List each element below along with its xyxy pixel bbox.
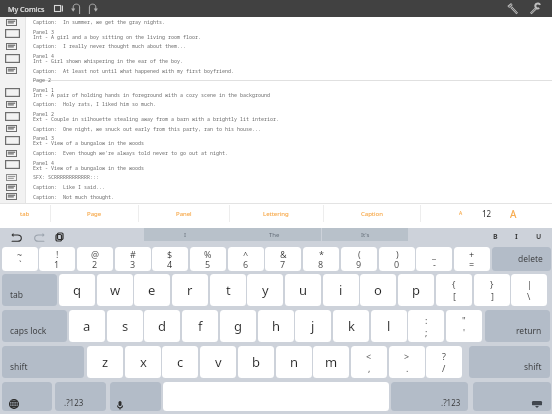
button[interactable]: Paste: [52, 230, 66, 244]
button[interactable]: Caption: [6, 19, 17, 26]
button[interactable]: u: [285, 274, 321, 306]
button[interactable]: Caption: [6, 184, 17, 191]
button[interactable]: Hide keyboard: [473, 382, 551, 411]
button[interactable]: t: [210, 274, 246, 306]
button[interactable]: Sound effect: [6, 174, 17, 181]
button[interactable]: Panels: [49, 0, 67, 17]
button[interactable]: U: [531, 229, 546, 244]
button[interactable]: Caption: [6, 150, 17, 157]
button[interactable]: Panel: [5, 160, 20, 169]
button[interactable]: l: [371, 310, 407, 342]
button[interactable]: .?123: [391, 382, 468, 411]
button[interactable]: It's: [322, 228, 408, 241]
button[interactable]: tab: [0, 204, 50, 223]
button[interactable]: Panel: [5, 88, 20, 97]
button[interactable]: :: [408, 310, 444, 342]
button[interactable]: 12: [466, 204, 508, 223]
button[interactable]: Undo: [68, 0, 84, 17]
button[interactable]: My Comics: [8, 0, 45, 17]
button[interactable]: c: [162, 346, 198, 378]
button[interactable]: q: [59, 274, 95, 306]
button[interactable]: ): [379, 247, 415, 271]
button[interactable]: Wrench tool: [526, 0, 544, 17]
button[interactable]: k: [333, 310, 369, 342]
staticText: B: [493, 232, 498, 242]
button[interactable]: x: [125, 346, 161, 378]
button[interactable]: +: [454, 247, 490, 271]
button[interactable]: Undo: [9, 230, 23, 244]
button[interactable]: Hammer tool: [504, 0, 522, 17]
button[interactable]: ?: [426, 346, 462, 378]
button[interactable]: p: [398, 274, 434, 306]
button[interactable]: caps lock: [2, 310, 67, 342]
button[interactable]: Change keyboard language: [2, 382, 52, 411]
button[interactable]: Voice input: [110, 382, 161, 411]
button[interactable]: m: [313, 346, 349, 378]
button[interactable]: _: [416, 247, 452, 271]
button[interactable]: Lettering: [229, 204, 323, 223]
button[interactable]: ^: [228, 247, 264, 271]
button[interactable]: %: [190, 247, 226, 271]
button[interactable]: The: [227, 228, 321, 241]
button[interactable]: a: [69, 310, 105, 342]
button[interactable]: f: [182, 310, 218, 342]
button[interactable]: z: [87, 346, 123, 378]
button[interactable]: ~: [2, 247, 38, 271]
button[interactable]: |: [511, 274, 547, 306]
button[interactable]: Larger text: [492, 204, 534, 223]
button[interactable]: h: [258, 310, 294, 342]
button[interactable]: Caption: [323, 204, 420, 223]
button[interactable]: s: [107, 310, 143, 342]
button[interactable]: #: [115, 247, 151, 271]
button[interactable]: Caption: [6, 193, 17, 200]
button[interactable]: Panel: [5, 112, 20, 121]
button[interactable]: b: [238, 346, 274, 378]
button[interactable]: Panel: [5, 54, 20, 63]
button[interactable]: $: [152, 247, 188, 271]
button[interactable]: &: [265, 247, 301, 271]
button[interactable]: r: [172, 274, 208, 306]
button[interactable]: return: [485, 310, 550, 342]
button[interactable]: Panel: [5, 29, 20, 38]
button[interactable]: <: [351, 346, 387, 378]
button[interactable]: e: [134, 274, 170, 306]
button[interactable]: .?123: [55, 382, 106, 411]
button[interactable]: @: [77, 247, 113, 271]
button[interactable]: shift: [469, 346, 550, 378]
staticText: .?123: [441, 397, 461, 408]
button[interactable]: w: [97, 274, 133, 306]
button[interactable]: tab: [2, 274, 57, 306]
button[interactable]: n: [276, 346, 312, 378]
button[interactable]: y: [247, 274, 283, 306]
button[interactable]: Caption: [6, 43, 17, 50]
button[interactable]: delete: [492, 247, 551, 271]
button[interactable]: Redo: [85, 0, 101, 17]
button[interactable]: Redo: [32, 230, 46, 244]
button[interactable]: B: [488, 229, 503, 244]
button[interactable]: ": [446, 310, 482, 342]
staticText: !: [56, 248, 59, 260]
button[interactable]: Caption: [6, 67, 17, 74]
button[interactable]: j: [295, 310, 331, 342]
button[interactable]: {: [436, 274, 472, 306]
button[interactable]: shift: [2, 346, 84, 378]
button[interactable]: >: [389, 346, 425, 378]
button[interactable]: }: [474, 274, 510, 306]
button[interactable]: d: [144, 310, 180, 342]
button[interactable]: Caption: [6, 101, 17, 108]
button[interactable]: *: [303, 247, 339, 271]
button[interactable]: Page: [50, 204, 138, 223]
button[interactable]: i: [323, 274, 359, 306]
button[interactable]: I: [509, 229, 524, 244]
button[interactable]: Panel: [5, 136, 20, 145]
button[interactable]: Panel: [138, 204, 229, 223]
button[interactable]: Caption: [6, 125, 17, 132]
button[interactable]: v: [200, 346, 236, 378]
button[interactable]: Smaller text: [440, 204, 482, 223]
button[interactable]: !: [39, 247, 75, 271]
button[interactable]: g: [220, 310, 256, 342]
button[interactable]: o: [360, 274, 396, 306]
button[interactable]: (: [341, 247, 377, 271]
